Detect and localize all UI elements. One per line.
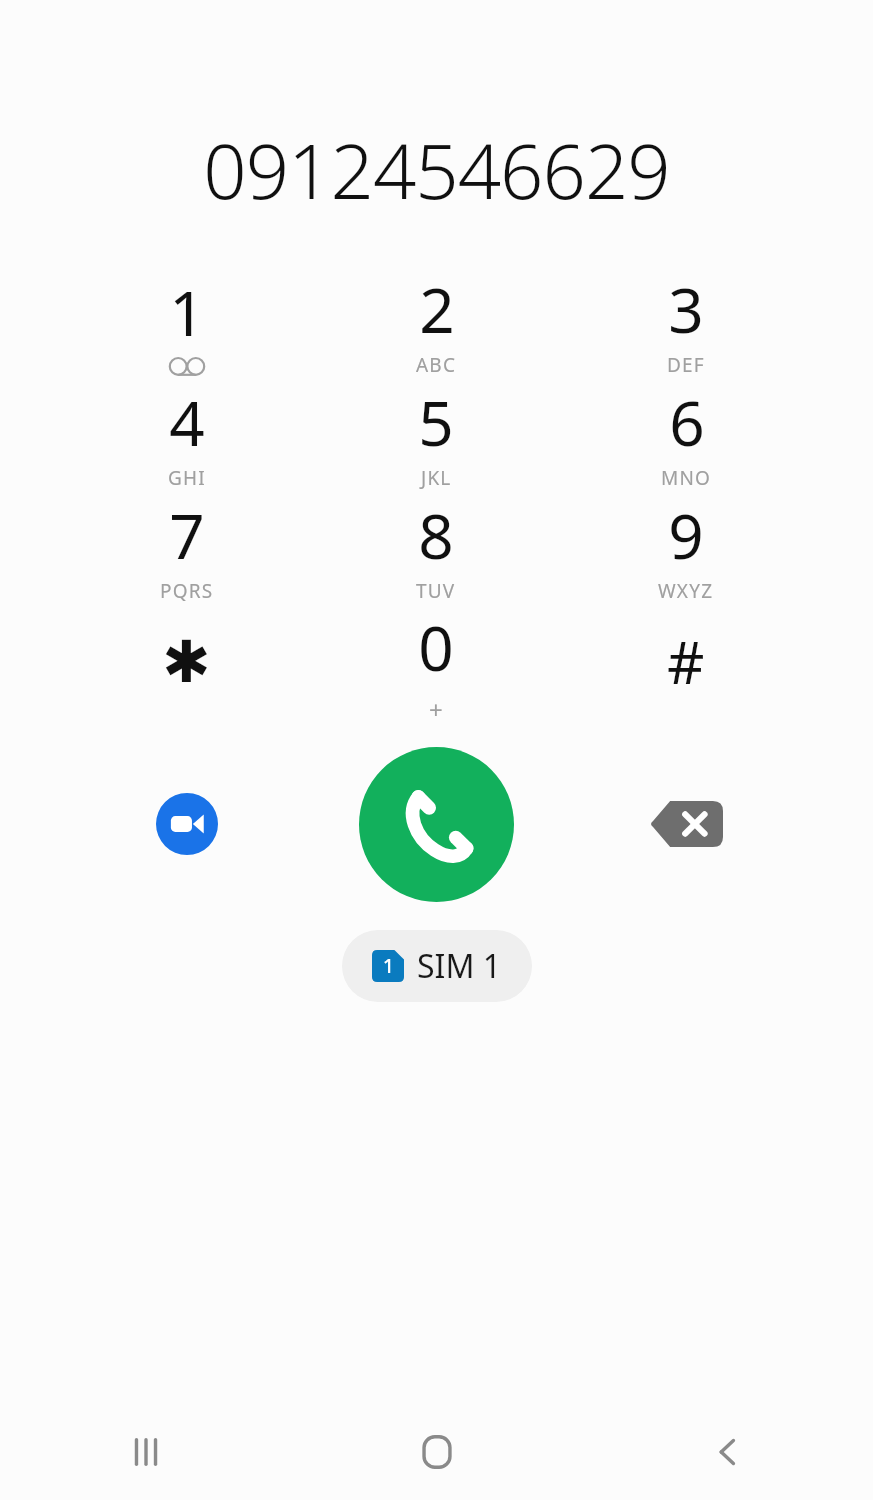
staticText: 9 [668,493,704,577]
button[interactable]: Back [582,1404,873,1500]
staticText: WXYZ [658,578,714,604]
button[interactable]: 1 [342,930,532,1002]
staticText: 3 [668,267,704,351]
button[interactable]: Key 8 [311,492,561,605]
button[interactable]: Key 3 [561,266,811,379]
button[interactable]: Home [291,1404,582,1500]
button[interactable]: Key # [561,605,811,718]
button[interactable]: Key 7 [62,492,311,605]
button[interactable]: Key 4 [62,379,311,492]
staticText: ABC [416,352,457,378]
staticText: JKL [421,465,452,491]
staticText: 1 [169,270,205,354]
staticText: SIM 1 [417,944,502,988]
button[interactable]: Video call [62,744,311,904]
button[interactable]: Backspace [561,744,811,904]
staticText: PQRS [160,578,214,604]
staticText: TUV [416,578,456,604]
staticText: 7 [169,493,205,577]
button[interactable]: Key 1 [62,266,311,379]
staticText: GHI [168,465,206,491]
staticText: 2 [419,267,455,351]
button[interactable]: Key 5 [311,379,561,492]
staticText: 5 [418,380,454,464]
button[interactable]: Key 0 [311,605,561,718]
staticText: 4 [169,380,205,464]
staticText: DEF [667,352,705,378]
button[interactable]: Call [359,747,514,902]
button[interactable]: Key ✱ [62,605,311,718]
staticText: 6 [669,380,705,464]
staticText: MNO [661,465,712,491]
staticText: # [667,622,705,701]
button[interactable]: Key 9 [561,492,811,605]
staticText: 09124546629 [203,118,670,214]
staticText: + [429,693,443,718]
button[interactable]: Key 2 [311,266,561,379]
staticText: 0 [418,605,454,689]
staticText: ✱ [162,628,211,696]
button[interactable]: Key 6 [561,379,811,492]
staticText: 1 [383,953,394,979]
staticText: 8 [418,493,454,577]
button[interactable]: Recents [0,1404,291,1500]
